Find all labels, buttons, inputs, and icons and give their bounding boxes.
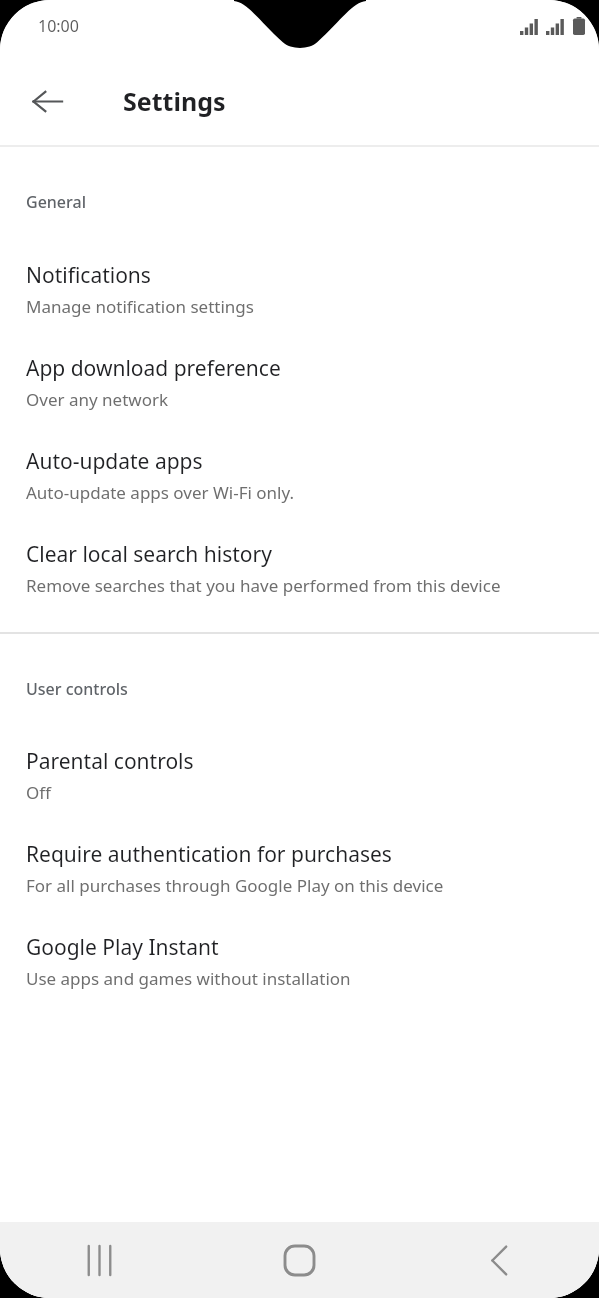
- staticText: Notifications: [26, 261, 151, 290]
- button[interactable]: Clear local search history: [0, 540, 599, 597]
- button[interactable]: Back: [16, 70, 78, 132]
- staticText: For all purchases through Google Play on…: [26, 874, 444, 897]
- staticText: General: [26, 191, 86, 213]
- button[interactable]: Parental controls: [0, 747, 599, 804]
- staticText: Auto-update apps: [26, 447, 203, 476]
- staticText: User controls: [26, 678, 128, 700]
- staticText: Remove searches that you have performed …: [26, 574, 501, 597]
- staticText: Clear local search history: [26, 540, 272, 569]
- button[interactable]: Google Play Instant: [0, 933, 599, 990]
- staticText: Settings: [123, 84, 226, 118]
- staticText: Google Play Instant: [26, 933, 219, 962]
- button[interactable]: Recent apps: [0, 1222, 199, 1298]
- staticText: Off: [26, 781, 51, 804]
- button[interactable]: Back: [399, 1222, 599, 1298]
- staticText: App download preference: [26, 354, 281, 383]
- button[interactable]: Require authentication for purchases: [0, 840, 599, 897]
- staticText: Parental controls: [26, 747, 194, 776]
- staticText: Auto-update apps over Wi-Fi only.: [26, 481, 295, 504]
- staticText: Require authentication for purchases: [26, 840, 392, 869]
- staticText: 10:00: [38, 15, 79, 37]
- button[interactable]: App download preference: [0, 354, 599, 411]
- staticText: Use apps and games without installation: [26, 967, 351, 990]
- staticText: Over any network: [26, 388, 169, 411]
- button[interactable]: Notifications: [0, 261, 599, 318]
- button[interactable]: Auto-update apps: [0, 447, 599, 504]
- staticText: Manage notification settings: [26, 295, 254, 318]
- button[interactable]: Home: [199, 1222, 399, 1298]
